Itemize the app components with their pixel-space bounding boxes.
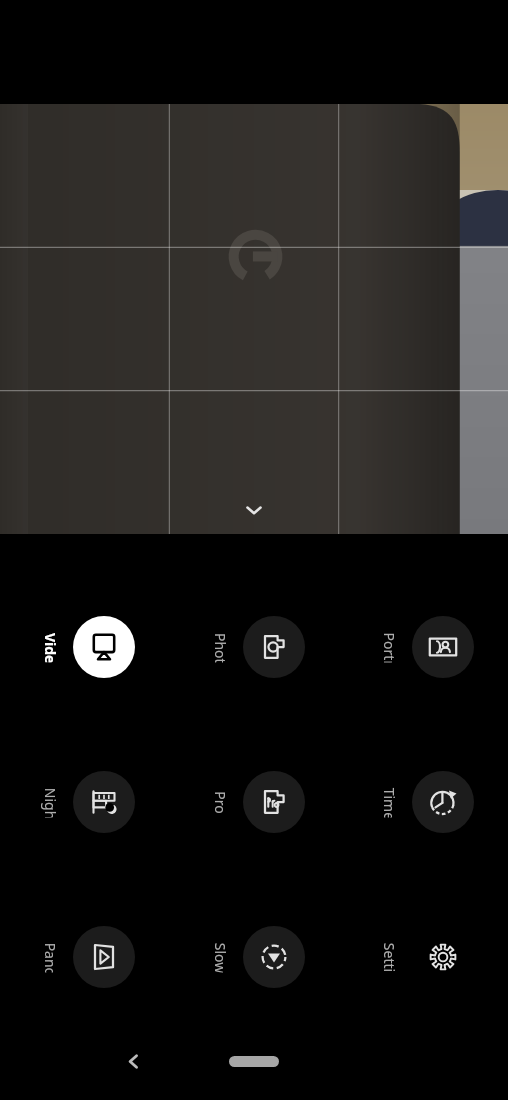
- button[interactable]: Settings: [339, 911, 508, 1003]
- button[interactable]: Slow motion: [170, 911, 339, 1003]
- button[interactable]: Back: [112, 1040, 154, 1082]
- button[interactable]: Time-lapse: [339, 756, 508, 848]
- button[interactable]: Pro: [170, 756, 339, 848]
- button[interactable]: Nightscape: [0, 756, 170, 848]
- staticText: Photo: [210, 632, 229, 662]
- button[interactable]: Portrait: [339, 601, 508, 693]
- button[interactable]: Video: [0, 601, 170, 693]
- button[interactable]: Collapse preview: [233, 489, 275, 531]
- staticText: Pro: [211, 791, 230, 814]
- staticText: Nightscape: [40, 787, 59, 817]
- staticText: Video: [40, 632, 59, 662]
- button[interactable]: Panorama: [0, 911, 170, 1003]
- staticText: Slow motion: [210, 942, 229, 972]
- staticText: Settings: [379, 942, 398, 972]
- staticText: Panorama: [40, 942, 59, 972]
- staticText: Time-lapse: [379, 787, 398, 817]
- staticText: Portrait: [379, 632, 398, 662]
- button[interactable]: Home: [223, 1046, 285, 1076]
- button[interactable]: Photo: [170, 601, 339, 693]
